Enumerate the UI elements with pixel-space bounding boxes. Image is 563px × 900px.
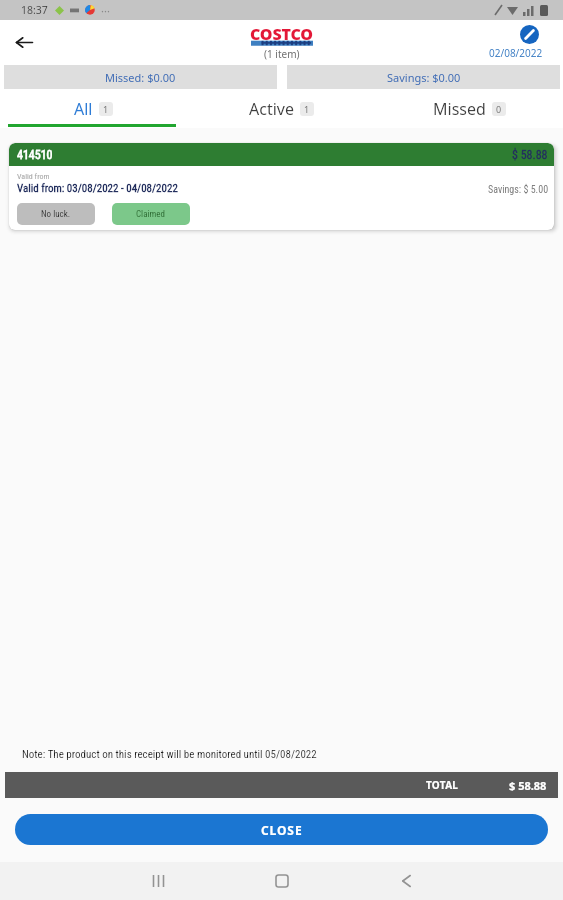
button[interactable]: Active <box>187 91 375 128</box>
staticText: Note: The product on this receipt will b… <box>22 748 317 761</box>
staticText: (1 item) <box>264 47 300 61</box>
button[interactable]: Edit <box>520 25 539 44</box>
staticText: 1 <box>304 103 310 115</box>
staticText: Missed <box>433 98 486 120</box>
button[interactable]: Back <box>6 24 42 60</box>
staticText: $ 58.88 <box>512 148 548 162</box>
button[interactable]: All <box>0 91 187 128</box>
button[interactable]: 414510 <box>9 143 554 230</box>
staticText: CLOSE <box>261 822 303 838</box>
staticText: 0 <box>496 103 502 115</box>
staticText: Valid from: 03/08/2022 - 04/08/2022 <box>17 182 178 195</box>
staticText: Savings: $ 5.00 <box>488 184 549 196</box>
staticText: ··· <box>101 3 110 18</box>
staticText: Active <box>249 98 294 120</box>
staticText: 414510 <box>17 148 53 162</box>
button[interactable]: CLOSE <box>15 814 548 845</box>
staticText: All <box>74 98 93 120</box>
staticText: No luck. <box>41 209 71 220</box>
staticText: Claimed <box>136 209 166 220</box>
button[interactable]: Missed <box>375 91 563 128</box>
staticText: 1 <box>103 103 109 115</box>
button[interactable]: Back <box>387 862 425 900</box>
button[interactable]: Claimed <box>112 203 190 225</box>
button[interactable]: Savings: $0.00 <box>287 65 560 89</box>
staticText: COSTCO <box>250 23 313 45</box>
button[interactable]: Home <box>263 862 301 900</box>
button[interactable]: Recents <box>139 862 177 900</box>
staticText: 18:37 <box>21 3 48 17</box>
staticText: $ 58.88 <box>509 778 547 793</box>
staticText: Valid from <box>17 172 50 181</box>
button[interactable]: Missed: $0.00 <box>4 65 277 89</box>
staticText: Savings: $0.00 <box>387 70 461 85</box>
button[interactable]: No luck. <box>17 203 95 225</box>
staticText: Missed: $0.00 <box>105 70 176 85</box>
staticText: TOTAL <box>426 778 459 792</box>
staticText: 02/08/2022 <box>489 46 543 60</box>
